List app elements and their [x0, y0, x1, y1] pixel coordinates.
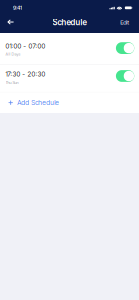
staticText: Add Schedule — [17, 98, 59, 107]
staticText: All Days — [6, 52, 21, 56]
staticText: Edit — [120, 19, 129, 26]
staticText: Thu Sun — [6, 80, 19, 85]
button[interactable]: Edit — [117, 16, 132, 28]
staticText: 9:41 — [13, 4, 22, 11]
staticText: 01:00 - 07:00 — [5, 42, 45, 50]
staticText: 17:30 - 20:30 — [5, 70, 45, 78]
button[interactable]: 01:00 - 07:00 — [0, 33, 139, 65]
button[interactable]: Back — [4, 15, 17, 28]
button[interactable]: Add Schedule — [0, 92, 139, 113]
button[interactable]: 17:30 - 20:30 — [0, 65, 139, 92]
staticText: Schedule — [52, 17, 86, 27]
